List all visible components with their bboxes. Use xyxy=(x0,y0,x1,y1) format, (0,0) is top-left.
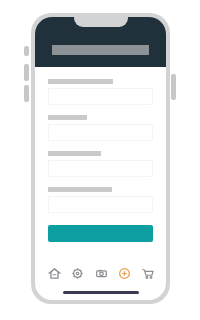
button[interactable]: Settings xyxy=(68,264,86,282)
button[interactable]: Add xyxy=(115,264,133,282)
button[interactable]: Home xyxy=(45,264,63,282)
button[interactable]: Camera xyxy=(92,264,110,282)
button[interactable] xyxy=(48,124,153,141)
button[interactable] xyxy=(48,225,153,242)
button[interactable] xyxy=(48,88,153,105)
button[interactable] xyxy=(48,196,153,213)
button[interactable]: Cart xyxy=(138,264,156,282)
button[interactable] xyxy=(48,160,153,177)
